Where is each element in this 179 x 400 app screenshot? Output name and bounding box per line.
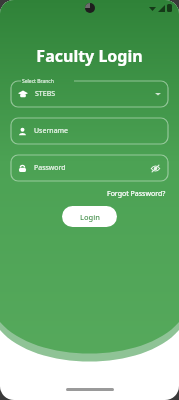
- staticText: STEBS: [35, 89, 56, 99]
- button[interactable]: [11, 155, 168, 181]
- button[interactable]: Forgot Password?: [105, 188, 168, 200]
- staticText: Select Branch: [22, 78, 54, 85]
- button[interactable]: Toggle password visibility: [149, 162, 161, 174]
- staticText: Username: [34, 126, 69, 136]
- button[interactable]: STEBS: [11, 81, 168, 107]
- button[interactable]: [11, 118, 168, 144]
- staticText: Faculty Login: [11, 45, 168, 67]
- staticText: Password: [34, 163, 66, 173]
- staticText: Login: [80, 212, 100, 222]
- button[interactable]: Login: [62, 206, 117, 227]
- staticText: Forgot Password?: [107, 189, 166, 199]
